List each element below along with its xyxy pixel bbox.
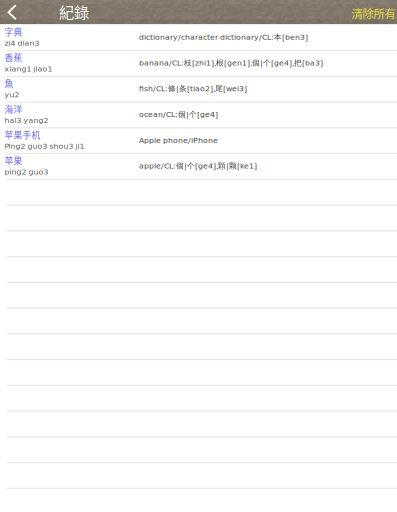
staticText: 海洋 — [5, 103, 23, 115]
staticText: yu2 — [5, 90, 20, 99]
staticText: 紀錄 — [59, 0, 89, 22]
staticText: ocean/CL:個|个[ge4] — [139, 110, 218, 119]
staticText: ping2 guo3 — [5, 167, 49, 176]
staticText: banana/CL:枝[zhi1],根[gen1],個|个[ge4],把[ba3… — [139, 58, 323, 68]
button[interactable]: 清除所有 — [351, 0, 397, 26]
staticText: 香蕉 — [5, 51, 23, 64]
staticText: 苹果 — [5, 154, 23, 167]
staticText: 魚 — [5, 77, 14, 89]
button[interactable]: 字典 — [0, 24, 397, 50]
staticText: zi4 dian3 — [5, 38, 40, 47]
staticText: fish/CL:條|条[tiao2],尾[wei3] — [139, 84, 247, 94]
button[interactable]: 苹果手机 — [0, 127, 397, 153]
staticText: dictionary/character dictionary/CL:本[ben… — [139, 32, 308, 42]
button[interactable]: 魚 — [0, 76, 397, 102]
button[interactable]: 苹果 — [0, 153, 397, 179]
staticText: Apple phone/iPhone — [139, 136, 218, 145]
staticText: apple/CL:個|个[ge4],顆|颗[ke1] — [139, 161, 257, 171]
button[interactable]: 香蕉 — [0, 50, 397, 76]
staticText: xiang1 jiao1 — [5, 64, 53, 73]
staticText: 清除所有 — [351, 5, 395, 22]
staticText: 苹果手机 — [5, 128, 41, 141]
staticText: Ping2 guo3 shou3 ji1 — [5, 141, 85, 150]
staticText: 字典 — [5, 25, 23, 38]
staticText: hai3 yang2 — [5, 116, 49, 125]
button[interactable]: 海洋 — [0, 102, 397, 127]
button[interactable]: Back — [0, 0, 26, 24]
